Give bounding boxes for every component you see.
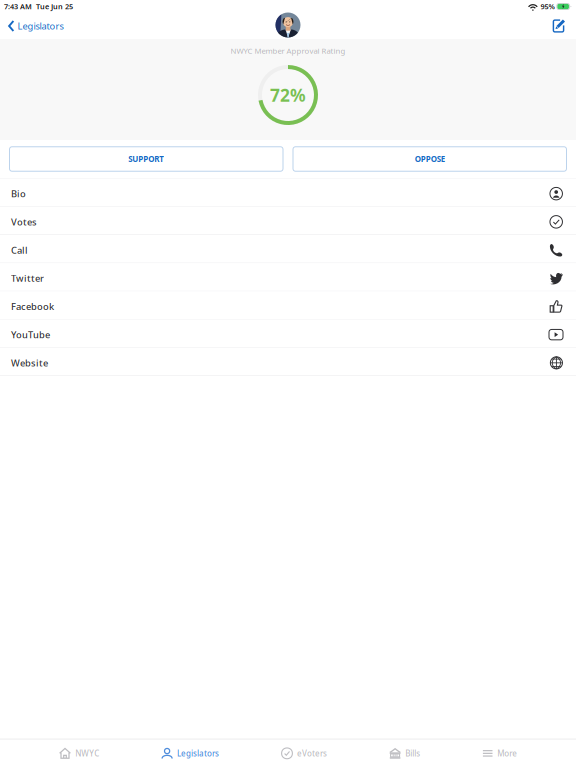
button[interactable]: Facebook <box>0 291 576 320</box>
staticText: 7:43 AM <box>4 1 32 11</box>
staticText: Call <box>11 244 28 256</box>
staticText: Legislators <box>17 20 63 32</box>
staticText: Facebook <box>11 300 54 313</box>
staticText: NWYC Member Approval Rating <box>230 45 345 56</box>
button[interactable]: Twitter <box>0 263 576 291</box>
staticText: NWYC <box>75 748 99 759</box>
staticText: Bills <box>405 748 420 759</box>
button[interactable]: YouTube <box>0 320 576 348</box>
button[interactable]: Legislators <box>161 740 219 767</box>
button[interactable]: Legislators <box>0 14 71 38</box>
staticText: Website <box>11 356 48 369</box>
staticText: YouTube <box>11 328 50 341</box>
staticText: Votes <box>11 215 37 228</box>
staticText: OPPOSE <box>415 154 445 164</box>
button[interactable]: Votes <box>0 207 576 235</box>
staticText: Bio <box>11 187 26 200</box>
button[interactable]: Website <box>0 348 576 376</box>
staticText: SUPPORT <box>128 154 164 164</box>
button[interactable]: Bio <box>0 179 576 207</box>
button[interactable]: Bills <box>389 740 420 767</box>
staticText: More <box>497 748 517 759</box>
staticText: Legislators <box>177 748 219 759</box>
staticText: Twitter <box>11 272 44 285</box>
button[interactable]: NWYC <box>59 740 99 767</box>
staticText: Tue Jun 25 <box>32 1 73 11</box>
staticText: 95% <box>538 1 556 11</box>
button[interactable]: eVoters <box>281 740 327 767</box>
button[interactable]: Call <box>0 235 576 263</box>
button[interactable]: OPPOSE <box>292 146 567 172</box>
staticText: 72% <box>270 83 306 107</box>
staticText: eVoters <box>297 748 327 759</box>
button[interactable]: More <box>482 740 517 767</box>
button[interactable]: SUPPORT <box>9 146 283 172</box>
button[interactable]: Compose <box>543 14 576 38</box>
